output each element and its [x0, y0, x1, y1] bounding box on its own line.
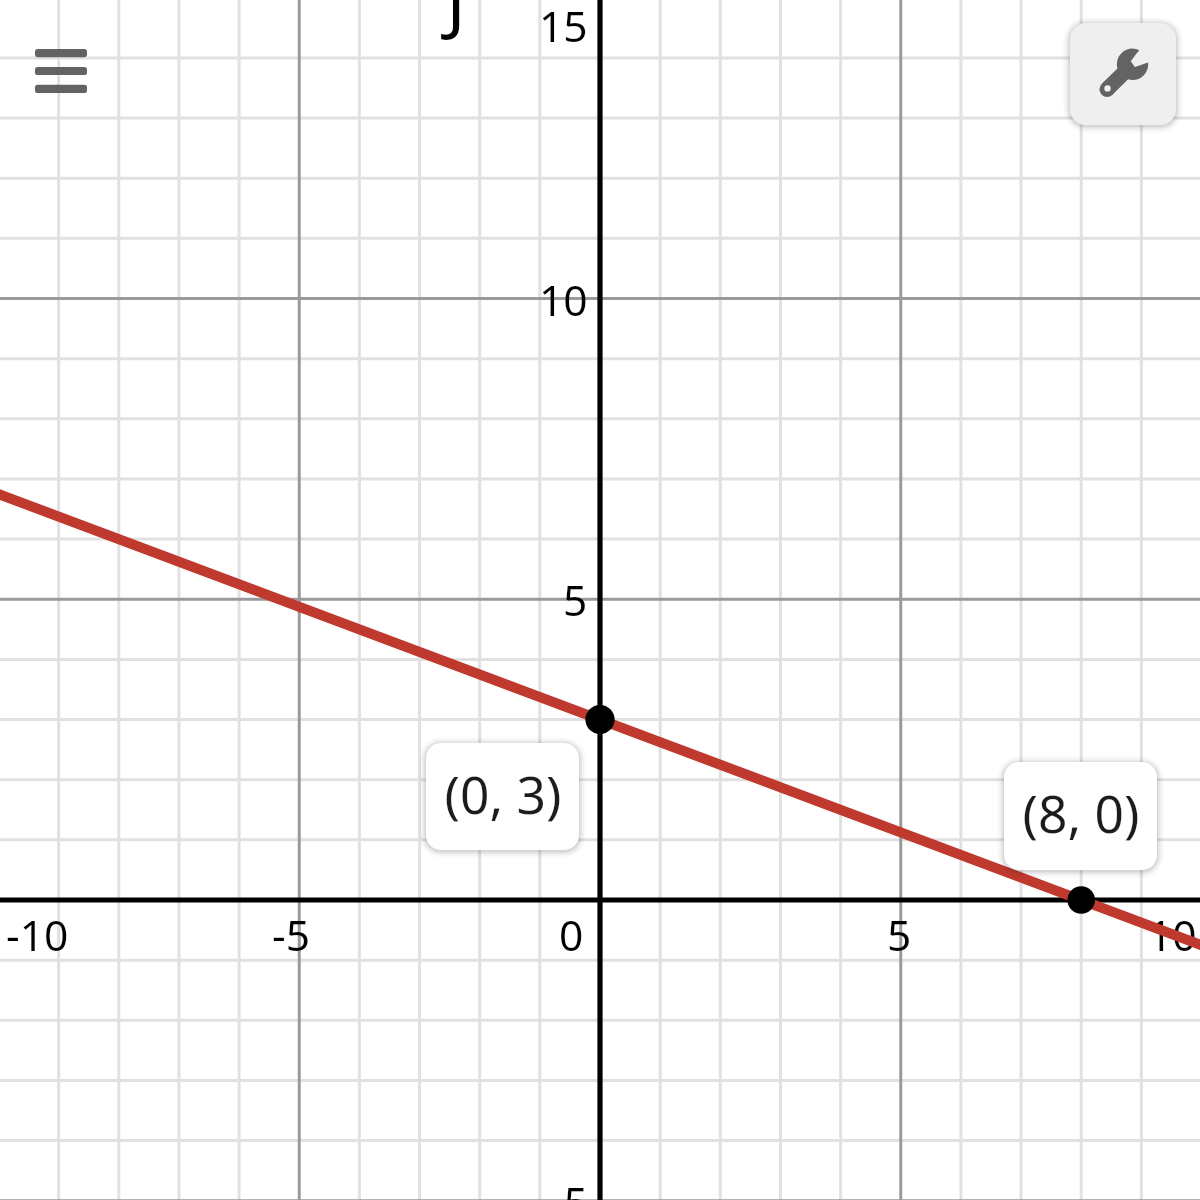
button[interactable]: Settings — [1070, 23, 1176, 125]
staticText: (0, 3) — [444, 759, 562, 829]
button[interactable]: (8, 0) — [1004, 762, 1157, 870]
staticText: (8, 0) — [1022, 778, 1140, 848]
button[interactable]: Open menu — [35, 49, 87, 93]
button[interactable]: (0, 3) — [426, 743, 579, 850]
